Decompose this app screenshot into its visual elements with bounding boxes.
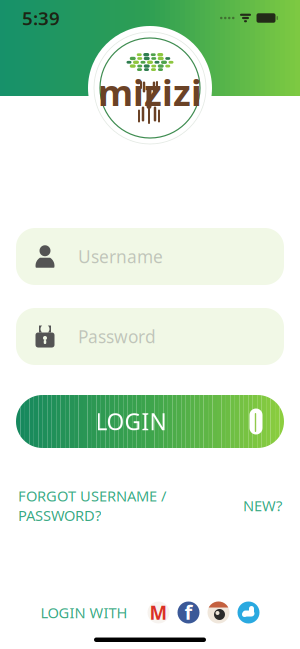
- button[interactable]: Log in with Instagram: [207, 601, 229, 623]
- button[interactable]: Log in with Twitter: [237, 601, 259, 623]
- staticText: LOGIN: [95, 406, 166, 436]
- staticText: mizizi: [98, 68, 202, 116]
- button[interactable]: Log in with Facebook: [177, 601, 199, 623]
- staticText: 5:39: [22, 6, 60, 30]
- staticText: Password: [78, 325, 156, 348]
- button[interactable]: NEW?: [243, 496, 282, 515]
- button[interactable]: Log in with Gmail: [147, 601, 169, 623]
- button[interactable]: FORGOT USERNAME /PASSWORD?: [18, 486, 166, 525]
- staticText: Username: [78, 245, 163, 268]
- staticText: LOGIN WITH: [40, 603, 127, 622]
- button[interactable]: Username: [16, 228, 284, 285]
- staticText: FORGOT USERNAME /PASSWORD?: [18, 486, 166, 525]
- button[interactable]: LOGIN: [16, 395, 284, 448]
- staticText: NEW?: [243, 496, 282, 515]
- staticText: f: [184, 599, 192, 625]
- button[interactable]: Password: [16, 308, 284, 365]
- staticText: M: [149, 600, 167, 625]
